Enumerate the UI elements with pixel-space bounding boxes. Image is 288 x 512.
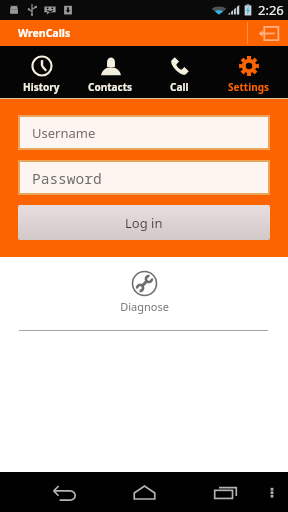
staticText: 2:26 xyxy=(258,1,284,19)
staticText: Settings xyxy=(228,80,269,94)
button[interactable]: Settings xyxy=(214,46,283,98)
button[interactable]: Password xyxy=(20,162,268,193)
button[interactable]: Home xyxy=(120,472,168,512)
button[interactable]: Username xyxy=(20,117,268,148)
button[interactable]: Diagnose xyxy=(0,270,288,314)
button[interactable]: History xyxy=(7,46,76,98)
button[interactable]: Recents xyxy=(201,472,249,512)
staticText: Password xyxy=(32,168,102,188)
staticText: History xyxy=(23,80,60,94)
button[interactable]: Log in xyxy=(18,205,270,240)
staticText: Contacts xyxy=(88,80,133,94)
button[interactable]: More options xyxy=(256,472,288,512)
button[interactable]: Call xyxy=(145,46,214,98)
staticText: Diagnose xyxy=(120,299,169,314)
staticText: WrenCalls xyxy=(18,26,71,40)
button[interactable]: Log out xyxy=(248,20,288,46)
button[interactable]: Back xyxy=(40,472,88,512)
staticText: Call xyxy=(170,80,189,94)
staticText: Username xyxy=(32,124,96,142)
staticText: Log in xyxy=(125,214,163,232)
button[interactable]: Contacts xyxy=(76,46,145,98)
